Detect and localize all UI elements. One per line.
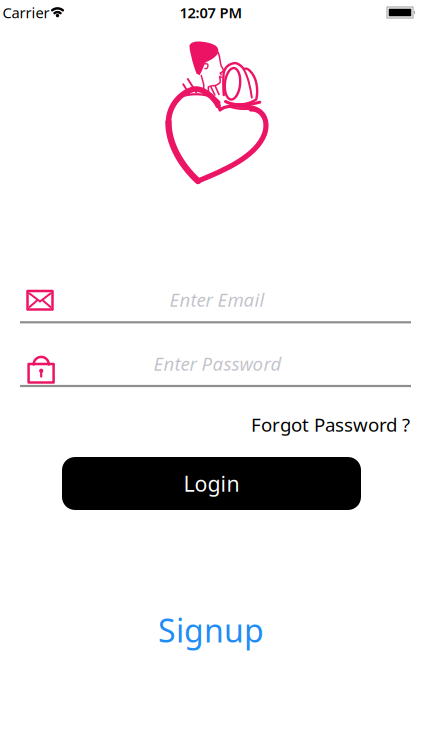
button[interactable]: Login	[62, 457, 361, 510]
staticText: Forgot Password ?	[251, 412, 410, 437]
staticText: Signup	[158, 609, 264, 651]
staticText: 12:07 PM	[179, 3, 242, 22]
button[interactable]: Enter Email	[0, 284, 422, 328]
button[interactable]: Forgot Password ?	[0, 412, 410, 436]
staticText: Login	[183, 469, 239, 498]
staticText: Enter Email	[169, 287, 264, 312]
button[interactable]: Signup	[158, 609, 264, 651]
staticText: Enter Password	[153, 351, 281, 376]
button[interactable]: Enter Password	[0, 350, 422, 394]
staticText: Carrier	[2, 3, 49, 22]
